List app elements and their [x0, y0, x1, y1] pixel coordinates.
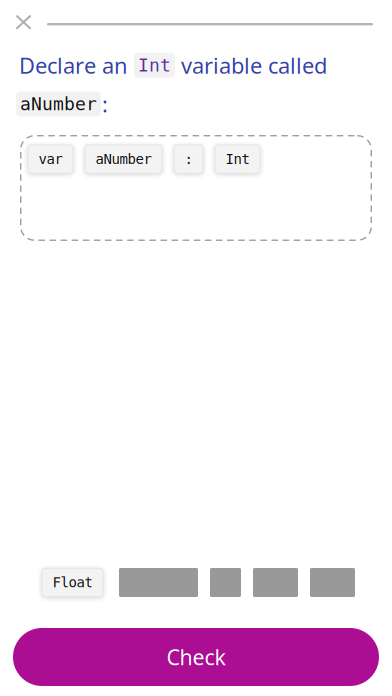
staticText: Int [225, 151, 249, 167]
button[interactable]: Close [0, 0, 47, 40]
staticText: : [184, 151, 192, 167]
staticText: Float [52, 574, 92, 591]
button[interactable]: Float [42, 568, 103, 597]
staticText: : [102, 89, 108, 119]
staticText: Int [138, 55, 171, 76]
button[interactable]: : [174, 145, 203, 173]
staticText: variable called [175, 50, 327, 80]
button[interactable]: var [28, 145, 73, 173]
button[interactable]: Check [13, 628, 379, 686]
staticText: aNumber [95, 151, 151, 167]
staticText: var [38, 151, 62, 167]
staticText: Check [166, 642, 225, 672]
staticText: Declare an [19, 50, 134, 80]
button[interactable]: aNumber [85, 145, 162, 173]
button[interactable]: Int [215, 145, 260, 173]
staticText: aNumber [20, 94, 97, 115]
